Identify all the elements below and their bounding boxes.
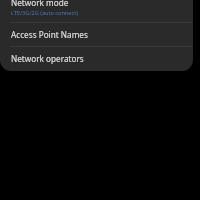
staticText: Network operators [11,53,84,64]
staticText: LTE/3G/2G (auto connect) [11,9,78,17]
staticText: Access Point Names [11,29,88,40]
staticText: Network mode [11,0,69,8]
button[interactable]: Network operators [0,47,193,70]
button[interactable]: Access Point Names [0,23,193,46]
button[interactable]: Network mode [0,0,193,22]
